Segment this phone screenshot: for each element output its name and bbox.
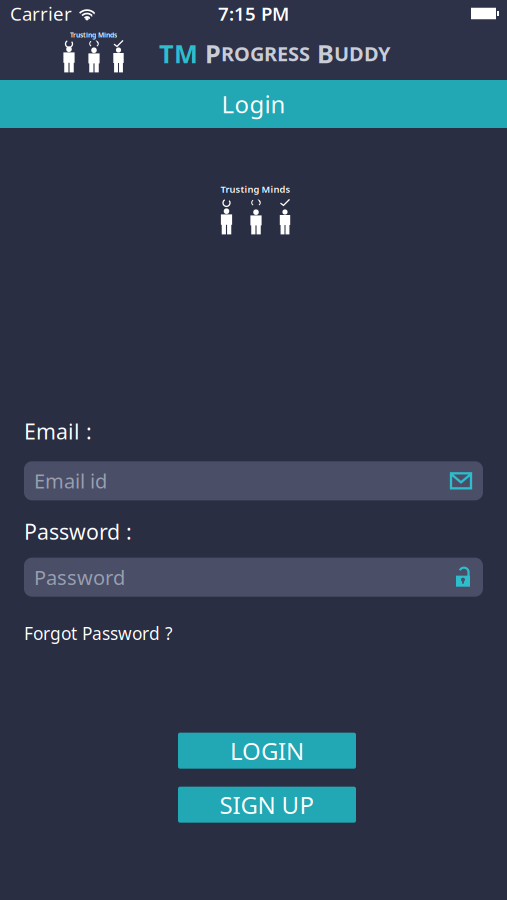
staticText: LOGIN — [230, 735, 304, 767]
staticText: Carrier — [10, 1, 72, 26]
button[interactable]: Password — [0, 558, 483, 597]
button[interactable]: Email id — [0, 461, 483, 500]
button[interactable]: LOGIN — [178, 733, 356, 769]
staticText: P — [198, 37, 221, 70]
staticText: Login — [221, 88, 285, 120]
staticText: Email id — [34, 468, 107, 494]
button[interactable]: Forgot Password ? — [0, 622, 173, 645]
staticText: TM — [159, 37, 198, 70]
staticText: Password — [34, 564, 125, 590]
staticText: SIGN UP — [219, 789, 314, 821]
staticText: Forgot Password ? — [24, 622, 173, 645]
staticText: Trusting Minds — [70, 31, 117, 39]
staticText: B — [310, 37, 334, 70]
staticText: Email : — [24, 417, 92, 445]
staticText: 7:15 PM — [218, 1, 289, 26]
staticText: UDDY — [334, 40, 391, 67]
staticText: Trusting Minds — [220, 183, 290, 195]
button[interactable]: Login — [0, 80, 507, 128]
button[interactable]: SIGN UP — [178, 787, 356, 823]
staticText: ROGRESS — [221, 40, 310, 67]
staticText: Password : — [24, 517, 132, 546]
